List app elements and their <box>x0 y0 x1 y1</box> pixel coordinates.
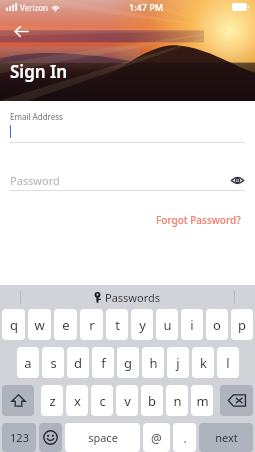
button[interactable]: x <box>66 385 88 416</box>
button[interactable]: n <box>166 385 188 416</box>
staticText: 1:47 PM <box>129 1 163 13</box>
staticText: 123 <box>10 430 29 445</box>
staticText: l <box>226 354 230 372</box>
staticText: f <box>101 354 106 372</box>
staticText: p <box>238 316 246 334</box>
staticText: Password <box>10 173 60 188</box>
button[interactable]: Email Address <box>10 111 245 143</box>
button[interactable]: y <box>131 309 153 340</box>
button[interactable]: . <box>173 423 196 452</box>
staticText: Email Address <box>10 111 63 122</box>
staticText: m <box>196 392 209 410</box>
button[interactable]: Forgot Password? <box>152 209 245 231</box>
button[interactable]: Back <box>8 18 34 44</box>
staticText: a <box>24 354 32 372</box>
button[interactable]: Shift <box>2 385 34 416</box>
staticText: h <box>149 354 158 372</box>
button[interactable]: Passwords <box>94 290 161 305</box>
button[interactable]: i <box>181 309 203 340</box>
staticText: c <box>99 392 106 410</box>
staticText: r <box>89 316 95 334</box>
staticText: q <box>10 316 18 334</box>
staticText: Sign In <box>10 60 68 83</box>
button[interactable]: p <box>231 309 253 340</box>
button[interactable]: t <box>106 309 128 340</box>
button[interactable]: w <box>28 309 51 340</box>
button[interactable]: z <box>41 385 63 416</box>
button[interactable]: v <box>116 385 138 416</box>
button[interactable]: d <box>67 347 89 378</box>
staticText: v <box>124 392 131 410</box>
staticText: k <box>200 354 207 372</box>
staticText: w <box>34 316 45 334</box>
staticText: x <box>74 392 81 410</box>
button[interactable]: f <box>92 347 114 378</box>
button[interactable]: Show password <box>229 172 245 188</box>
staticText: space <box>88 430 118 445</box>
staticText: i <box>190 316 194 334</box>
staticText: s <box>50 354 57 372</box>
staticText: e <box>62 316 70 334</box>
staticText: b <box>148 392 156 410</box>
button[interactable]: space <box>65 423 140 452</box>
button[interactable]: @ <box>143 423 170 452</box>
button[interactable]: next <box>199 423 253 452</box>
button[interactable]: o <box>206 309 228 340</box>
button[interactable]: m <box>191 385 213 416</box>
staticText: Passwords <box>105 290 161 305</box>
staticText: Forgot Password? <box>156 213 241 227</box>
button[interactable]: a <box>17 347 39 378</box>
staticText: Verizon <box>20 2 49 13</box>
staticText: t <box>115 316 120 334</box>
button[interactable]: 123 <box>2 423 36 452</box>
button[interactable]: q <box>2 309 25 340</box>
staticText: d <box>74 354 82 372</box>
button[interactable]: c <box>91 385 113 416</box>
button[interactable]: s <box>42 347 64 378</box>
button[interactable]: Password <box>10 170 245 191</box>
button[interactable]: b <box>141 385 163 416</box>
button[interactable]: j <box>167 347 189 378</box>
button[interactable]: Backspace <box>220 385 253 416</box>
staticText: y <box>139 316 146 334</box>
staticText: next <box>215 430 238 445</box>
staticText: j <box>176 354 180 372</box>
button[interactable]: h <box>142 347 164 378</box>
button[interactable]: g <box>117 347 139 378</box>
staticText: z <box>49 392 56 410</box>
button[interactable]: Emoji <box>39 423 62 452</box>
staticText: n <box>173 392 182 410</box>
staticText: g <box>124 354 132 372</box>
staticText: u <box>163 316 172 334</box>
staticText: @ <box>151 430 162 446</box>
staticText: o <box>213 316 221 334</box>
button[interactable]: k <box>192 347 214 378</box>
button[interactable]: r <box>80 309 103 340</box>
button[interactable]: e <box>54 309 77 340</box>
staticText: . <box>183 430 187 446</box>
button[interactable]: u <box>156 309 178 340</box>
button[interactable]: l <box>217 347 239 378</box>
